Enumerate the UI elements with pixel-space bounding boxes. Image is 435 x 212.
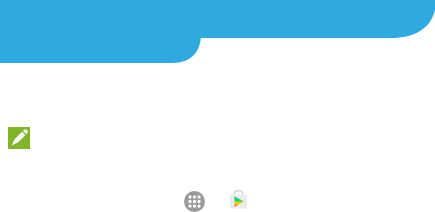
button[interactable]: Play Store: [228, 189, 249, 210]
button[interactable]: All apps: [184, 191, 205, 212]
button[interactable]: Edit: [8, 127, 30, 149]
